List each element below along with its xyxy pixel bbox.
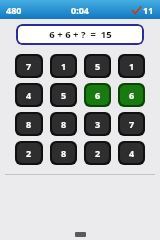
staticText: 1 [61,60,67,72]
staticText: 5 [95,60,101,72]
button[interactable]: 4 [120,143,143,163]
button[interactable]: 1 [120,56,143,76]
staticText: 2 [26,147,32,159]
button[interactable]: 5 [86,56,109,76]
button[interactable]: 2 [17,143,41,163]
staticText: 6 [129,89,135,101]
staticText: 8 [61,147,67,159]
staticText: 4 [129,147,135,159]
other: Correct answers [132,6,141,15]
staticText: 0:04 [71,4,89,16]
button[interactable]: 2 [86,143,109,163]
staticText: 5 [61,89,67,101]
button[interactable]: 7 [17,56,41,76]
button[interactable]: 6 [120,85,143,105]
button[interactable]: 7 [120,114,143,134]
button[interactable]: 8 [17,114,41,134]
staticText: 6 [95,89,101,101]
staticText: 4 [26,89,32,101]
staticText: 3 [95,118,101,130]
staticText: 8 [61,118,67,130]
staticText: 8 [26,118,32,130]
staticText: 7 [26,60,32,72]
button[interactable]: 1 [52,56,75,76]
staticText: 11 [143,4,154,16]
staticText: 6 + 6 + ? = 15 [49,28,112,41]
button[interactable]: 6 [86,85,109,105]
staticText: 480 [6,4,22,16]
staticText: 7 [129,118,135,130]
button[interactable]: 8 [52,143,75,163]
staticText: 2 [95,147,101,159]
staticText: 1 [129,60,135,72]
button[interactable]: 5 [52,85,75,105]
button[interactable]: 6 + 6 + ? = 15 [16,24,144,45]
button[interactable]: 3 [86,114,109,134]
button[interactable]: 8 [52,114,75,134]
button[interactable]: 4 [17,85,41,105]
